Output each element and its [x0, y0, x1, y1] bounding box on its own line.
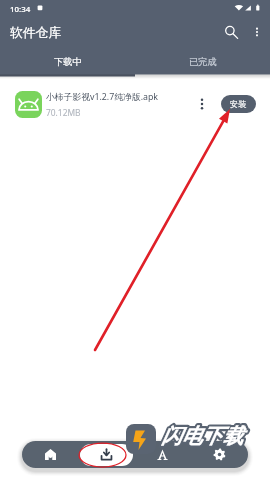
staticText: 闪电下载 [161, 423, 243, 449]
button[interactable]: Apps [134, 441, 191, 468]
button[interactable]: More options [244, 19, 270, 45]
staticText: 已完成 [189, 56, 217, 68]
staticText: 安装 [230, 99, 247, 109]
button[interactable]: More [192, 72, 212, 136]
staticText: 10:34 [10, 4, 31, 15]
staticText: 70.12MB [46, 107, 81, 118]
button[interactable]: 安装 [221, 95, 256, 113]
button[interactable]: 小柿子影视v1.2.7纯净版.apk [0, 72, 270, 136]
staticText: 下载中 [54, 56, 82, 68]
button[interactable]: 已完成 [135, 46, 270, 72]
button[interactable]: Home [22, 441, 78, 468]
button[interactable]: Search [218, 19, 244, 45]
staticText: 小柿子影视v1.2.7纯净版.apk [46, 91, 159, 103]
staticText: 闪电下载 [161, 423, 243, 449]
button[interactable]: 下载中 [0, 46, 135, 72]
button[interactable]: Settings [191, 441, 248, 468]
staticText: 软件仓库 [10, 25, 62, 41]
button[interactable]: Downloads [78, 441, 134, 468]
